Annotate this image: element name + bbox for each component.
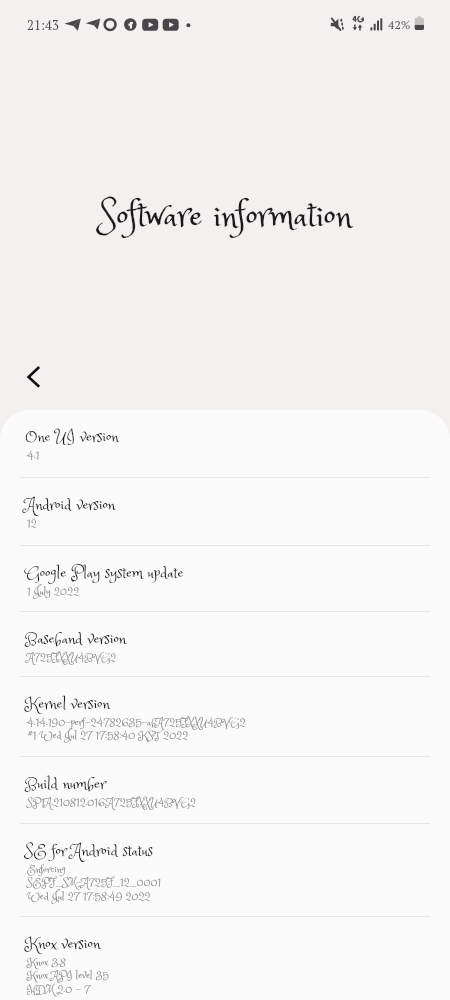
button[interactable]: Back: [10, 353, 58, 401]
button[interactable]: Android version: [0, 478, 450, 545]
staticText: One UI version: [25, 425, 119, 450]
button[interactable]: Kernel version: [0, 677, 450, 756]
button[interactable]: Baseband version: [0, 612, 450, 676]
staticText: SEPF_SM-A725F_12_0001: [27, 874, 162, 891]
staticText: Enforcing: [27, 861, 66, 878]
button[interactable]: SE for Android status: [0, 824, 450, 916]
staticText: Knox API level 35: [27, 967, 109, 984]
button[interactable]: Google Play system update: [0, 546, 450, 611]
staticText: Google Play system update: [25, 561, 184, 586]
staticText: 1 July 2022: [27, 583, 80, 600]
staticText: Knox version: [25, 932, 101, 957]
staticText: Build number: [25, 772, 106, 797]
staticText: 12: [27, 515, 37, 532]
staticText: Kernel version: [25, 692, 110, 717]
staticText: A725FXXU4BVG2: [27, 649, 117, 666]
button[interactable]: Knox version: [0, 917, 450, 1000]
button[interactable]: Build number: [0, 757, 450, 823]
staticText: SP1A.210812.016.A725FXXU4BVG2: [27, 794, 197, 811]
staticText: Knox 3.8: [27, 954, 66, 971]
staticText: HDM 2.0 - 7: [27, 981, 91, 998]
staticText: SE for Android status: [25, 839, 153, 864]
staticText: Baseband version: [25, 627, 126, 652]
staticText: Software information: [0, 189, 450, 245]
staticText: 4.1: [27, 447, 40, 464]
staticText: 42%: [388, 17, 411, 33]
staticText: 21:43: [27, 16, 59, 33]
staticText: Wed Jul 27 17:58:49 2022: [27, 888, 151, 905]
staticText: Android version: [25, 493, 116, 518]
button[interactable]: One UI version: [0, 410, 450, 477]
staticText: 4.14.190-perf-24782635-abA725FXXU4BVG2: [27, 714, 246, 731]
staticText: #1 Wed Jul 27 17:58:40 KST 2022: [27, 727, 189, 744]
